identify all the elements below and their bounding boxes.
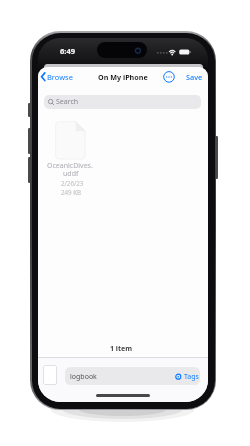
staticText: 1 item xyxy=(110,344,132,354)
button[interactable] xyxy=(65,367,200,385)
staticText: 6:49 xyxy=(60,46,75,56)
staticText: Search xyxy=(56,97,79,107)
button[interactable]: Save xyxy=(177,70,203,84)
button[interactable]: Browse xyxy=(47,70,79,84)
staticText: logbook xyxy=(70,372,97,382)
button[interactable]: Tags xyxy=(184,370,206,384)
staticText: 2/26/23 xyxy=(61,179,84,187)
staticText: uddf xyxy=(63,169,79,179)
button[interactable] xyxy=(48,120,93,195)
staticText: Save xyxy=(186,72,203,82)
staticText: Browse xyxy=(47,72,73,82)
staticText: On My iPhone xyxy=(98,72,148,82)
staticText: 249 KB xyxy=(61,188,82,196)
staticText: Tags xyxy=(184,372,199,382)
button[interactable] xyxy=(162,70,176,84)
staticText: OceanicDives. xyxy=(47,161,93,171)
button[interactable] xyxy=(44,95,201,109)
